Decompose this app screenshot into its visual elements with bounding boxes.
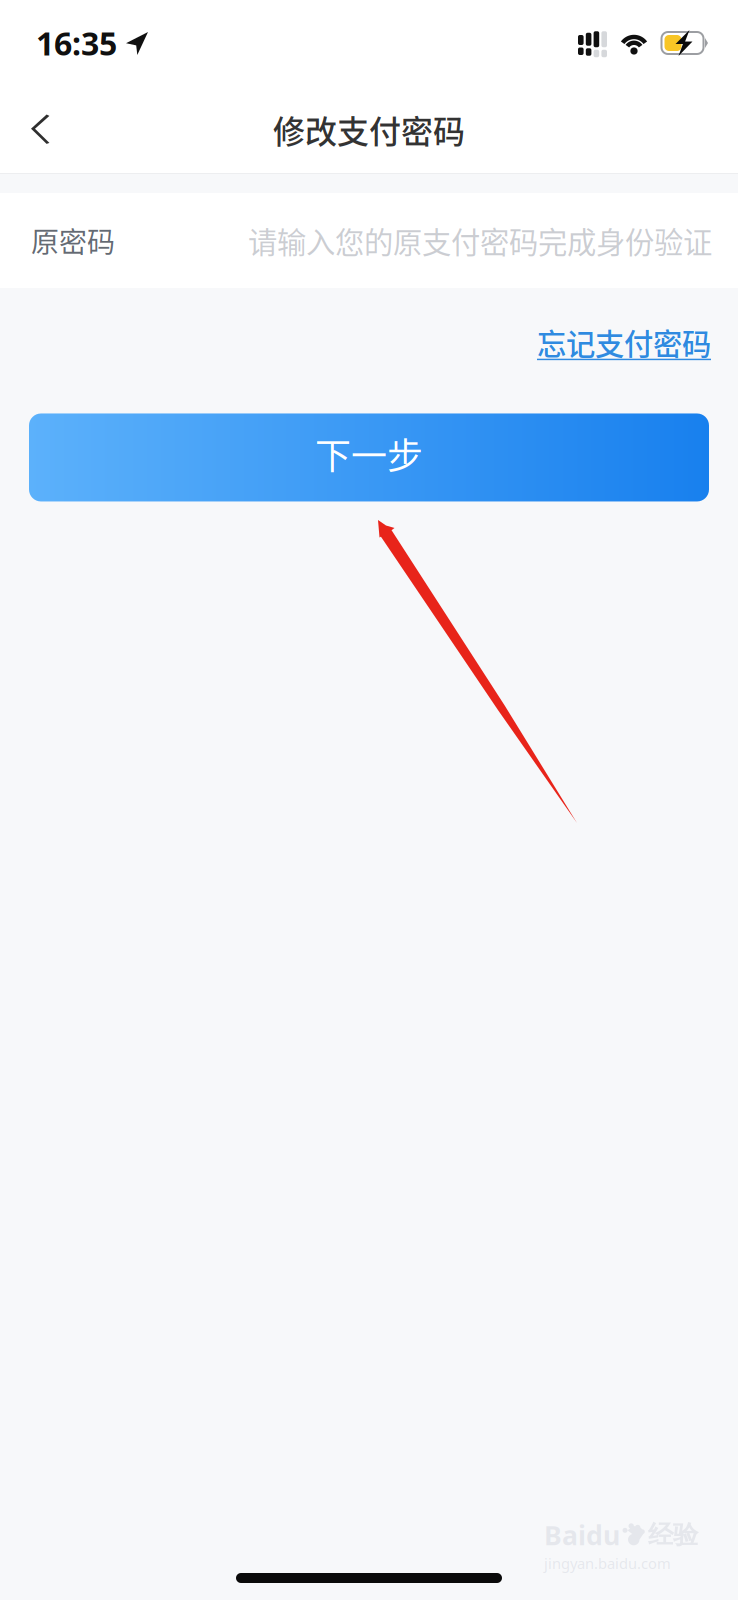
staticText: 下一步 [315,427,423,479]
staticText: 16:35 [36,22,117,64]
button[interactable]: 忘记支付密码 [537,321,711,363]
button[interactable]: 原密码 [0,193,738,288]
staticText: Baidu [544,1517,620,1552]
staticText: 经验 [648,1519,698,1550]
button[interactable]: Back [10,98,72,160]
staticText: 修改支付密码 [273,106,465,153]
staticText: 请输入您的原支付密码完成身份验证 [248,219,712,262]
staticText: 忘记支付密码 [537,321,711,363]
staticText: 原密码 [31,220,115,261]
staticText: jingyan.baidu.com [544,1553,671,1573]
button[interactable]: 下一步 [29,413,709,501]
